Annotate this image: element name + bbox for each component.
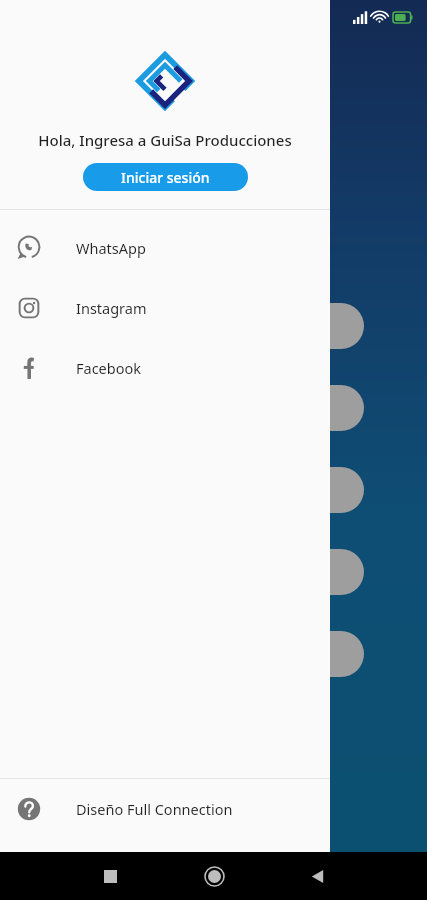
button[interactable]: Recent apps: [90, 856, 130, 896]
button[interactable]: Iniciar sesión: [83, 163, 248, 191]
staticText: Hola, Ingresa a GuiSa Producciones: [0, 130, 330, 150]
button[interactable]: Instagram: [0, 278, 330, 338]
staticText: Iniciar sesión: [121, 168, 210, 187]
button[interactable]: Home: [194, 856, 234, 896]
staticText: Facebook: [76, 358, 142, 378]
staticText: Instagram: [76, 298, 147, 318]
staticText: WhatsApp: [76, 238, 146, 258]
button[interactable]: WhatsApp: [0, 218, 330, 278]
button[interactable]: Diseño Full Connection: [0, 779, 330, 839]
button[interactable]: Back: [297, 856, 337, 896]
staticText: Diseño Full Connection: [76, 799, 233, 819]
button[interactable]: Facebook: [0, 338, 330, 398]
